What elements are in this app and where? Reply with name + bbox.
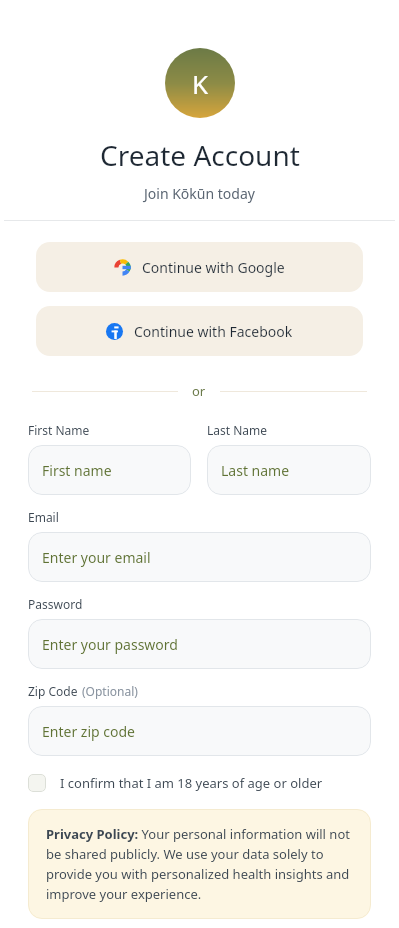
staticText: Privacy Policy: Your personal informatio… xyxy=(46,825,353,903)
staticText: First name xyxy=(42,461,112,480)
staticText: Continue with Facebook xyxy=(134,322,293,341)
button[interactable]: First name xyxy=(28,445,191,495)
staticText: or xyxy=(192,382,206,400)
staticText: Create Account xyxy=(100,136,300,174)
button[interactable]: Continue with Facebook xyxy=(36,306,363,356)
button[interactable]: Last name xyxy=(207,445,371,495)
staticText: Last name xyxy=(221,461,290,480)
staticText: Enter zip code xyxy=(42,722,135,741)
button[interactable]: Enter your email xyxy=(28,532,371,582)
staticText: Password xyxy=(28,596,83,612)
staticText: Enter your email xyxy=(42,548,151,567)
button[interactable]: Enter zip code xyxy=(28,706,371,756)
button[interactable]: Enter your password xyxy=(28,619,371,669)
staticText: Continue with Google xyxy=(142,258,285,277)
staticText: Zip Code xyxy=(28,683,78,699)
staticText: (Optional) xyxy=(82,683,138,699)
button[interactable]: Continue with Google xyxy=(36,242,363,292)
staticText: Email xyxy=(28,509,59,525)
button[interactable]: I confirm that I am 18 years of age or o… xyxy=(28,774,371,792)
staticText: Join Kōkūn today xyxy=(144,184,255,203)
staticText: K xyxy=(192,66,209,101)
staticText: First Name xyxy=(28,422,90,438)
staticText: I confirm that I am 18 years of age or o… xyxy=(60,774,323,792)
staticText: Enter your password xyxy=(42,635,178,654)
staticText: Last Name xyxy=(207,422,268,438)
